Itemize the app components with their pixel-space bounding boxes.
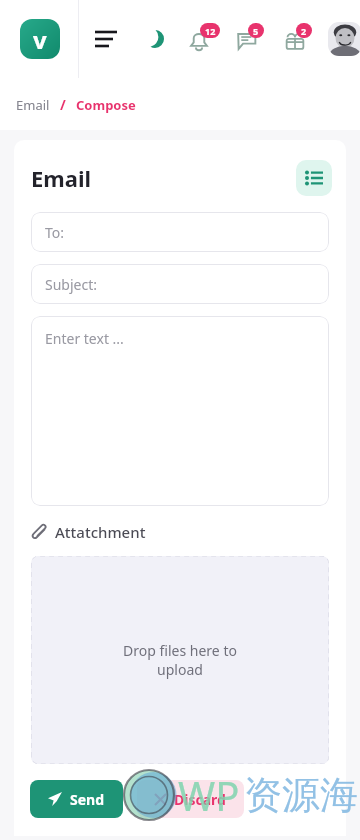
staticText: Send — [70, 790, 105, 809]
button[interactable]: Notifications 2 — [282, 22, 316, 56]
staticText: WP — [178, 768, 240, 822]
button[interactable]: Notifications 12 — [186, 22, 220, 56]
staticText: 5 — [253, 25, 259, 37]
button[interactable]: Enter text ... — [31, 316, 329, 506]
button[interactable]: Notifications 5 — [234, 22, 268, 56]
staticText: v — [33, 23, 47, 56]
button[interactable]: Send — [30, 780, 123, 818]
button[interactable]: List view — [296, 160, 332, 196]
button[interactable]: Email — [14, 96, 52, 114]
button[interactable]: Profile — [328, 22, 360, 56]
staticText: Compose — [76, 96, 136, 114]
button[interactable]: Dark mode — [140, 24, 170, 54]
button[interactable]: Menu — [90, 23, 122, 55]
staticText: Subject: — [45, 275, 97, 294]
button[interactable]: Home — [20, 19, 60, 59]
button[interactable]: Compose — [74, 96, 138, 114]
staticText: Drop files here to upload — [123, 641, 237, 679]
button[interactable]: Drop files here to upload — [31, 556, 329, 764]
staticText: 资源海 — [244, 771, 358, 819]
staticText: Email — [31, 163, 92, 193]
staticText: Discard — [174, 790, 226, 809]
button[interactable]: Discard — [137, 780, 244, 818]
staticText: Enter text ... — [45, 329, 124, 348]
button[interactable]: Subject: — [31, 264, 329, 304]
button[interactable]: To: — [31, 212, 329, 252]
staticText: Attatchment — [55, 522, 146, 542]
staticText: Email — [16, 96, 50, 114]
staticText: 2 — [301, 25, 307, 37]
staticText: To: — [45, 223, 65, 242]
staticText: 12 — [205, 25, 216, 37]
staticText: / — [60, 95, 66, 114]
